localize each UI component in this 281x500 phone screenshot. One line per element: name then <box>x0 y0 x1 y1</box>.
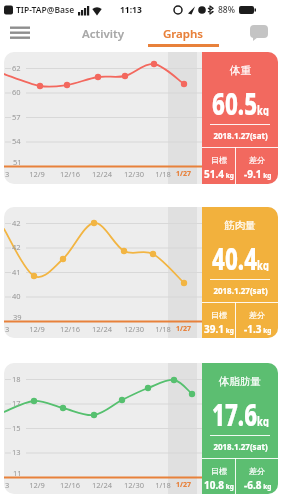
staticText: Graphs <box>163 26 204 42</box>
staticText: 17 <box>12 398 21 408</box>
staticText: 1/18 <box>155 324 171 334</box>
staticText: 1/18 <box>155 480 171 490</box>
staticText: 体脂肪量 <box>219 375 261 388</box>
staticText: 41 <box>12 267 21 277</box>
button[interactable]: Activity <box>68 20 138 47</box>
button[interactable]: 筋肉量 <box>202 207 278 338</box>
staticText: 57 <box>12 112 21 122</box>
staticText: 12/16 <box>60 324 80 334</box>
staticText: 11:13 <box>120 4 142 16</box>
staticText: 差分 <box>249 466 265 476</box>
staticText: 42 <box>12 218 21 228</box>
staticText: -1.3 kg <box>244 322 272 336</box>
staticText: 差分 <box>249 310 265 320</box>
staticText: 40 <box>12 291 21 301</box>
staticText: 12/30 <box>124 169 144 179</box>
staticText: 1/27 <box>176 480 191 490</box>
staticText: 目標 <box>211 310 227 320</box>
staticText: Activity <box>82 26 124 42</box>
staticText: 2018.1.27(sat) <box>213 441 268 452</box>
staticText: 10.8 kg <box>204 478 234 492</box>
staticText: 12/9 <box>29 169 45 179</box>
staticText: 17.6kg <box>212 393 269 427</box>
staticText: 目標 <box>211 155 227 165</box>
staticText: 12/24 <box>92 480 112 490</box>
staticText: 62 <box>12 63 21 73</box>
button[interactable]: 体重 <box>202 52 278 184</box>
button[interactable] <box>6 22 34 44</box>
button[interactable]: Graphs <box>148 20 219 47</box>
staticText: 11 <box>13 468 22 478</box>
staticText: 88% <box>218 4 235 16</box>
button[interactable]: 体脂肪量 <box>202 363 278 494</box>
staticText: 15 <box>12 423 21 433</box>
staticText: 12/30 <box>124 324 144 334</box>
staticText: 体重 <box>230 64 251 77</box>
staticText: 60.5kg <box>212 82 269 116</box>
button[interactable]: 42 <box>4 207 278 338</box>
staticText: 13 <box>12 447 21 457</box>
staticText: 39.1 kg <box>204 322 234 336</box>
staticText: 2018.1.27(sat) <box>213 130 268 141</box>
staticText: 60 <box>12 87 21 97</box>
staticText: -6.8 kg <box>244 478 272 492</box>
button[interactable]: 18 <box>4 363 278 494</box>
staticText: 12/16 <box>60 169 80 179</box>
staticText: 12/16 <box>60 480 80 490</box>
staticText: 3 <box>5 480 10 490</box>
staticText: 1/27 <box>176 169 191 179</box>
staticText: 12/9 <box>29 480 45 490</box>
staticText: 目標 <box>211 466 227 476</box>
staticText: 12/24 <box>92 324 112 334</box>
staticText: 54 <box>12 136 21 146</box>
button[interactable] <box>246 22 272 44</box>
staticText: 12/9 <box>29 324 45 334</box>
staticText: 18 <box>12 374 21 384</box>
staticText: 2018.1.27(sat) <box>213 285 268 296</box>
staticText: 42 <box>12 242 21 252</box>
button[interactable]: 62 <box>4 52 278 184</box>
staticText: 40.4kg <box>212 237 269 271</box>
staticText: 12/24 <box>92 169 112 179</box>
staticText: 51.4 kg <box>204 167 234 181</box>
staticText: 筋肉量 <box>224 219 256 232</box>
staticText: 3 <box>5 324 10 334</box>
staticText: 51 <box>13 157 22 167</box>
staticText: 12/30 <box>124 480 144 490</box>
staticText: TIP-TAP@Base <box>16 4 75 16</box>
staticText: 3 <box>5 169 10 179</box>
staticText: -9.1 kg <box>244 167 272 181</box>
staticText: 1/18 <box>155 169 171 179</box>
staticText: 1/27 <box>176 324 191 334</box>
staticText: 39 <box>13 312 22 322</box>
staticText: 差分 <box>249 155 265 165</box>
